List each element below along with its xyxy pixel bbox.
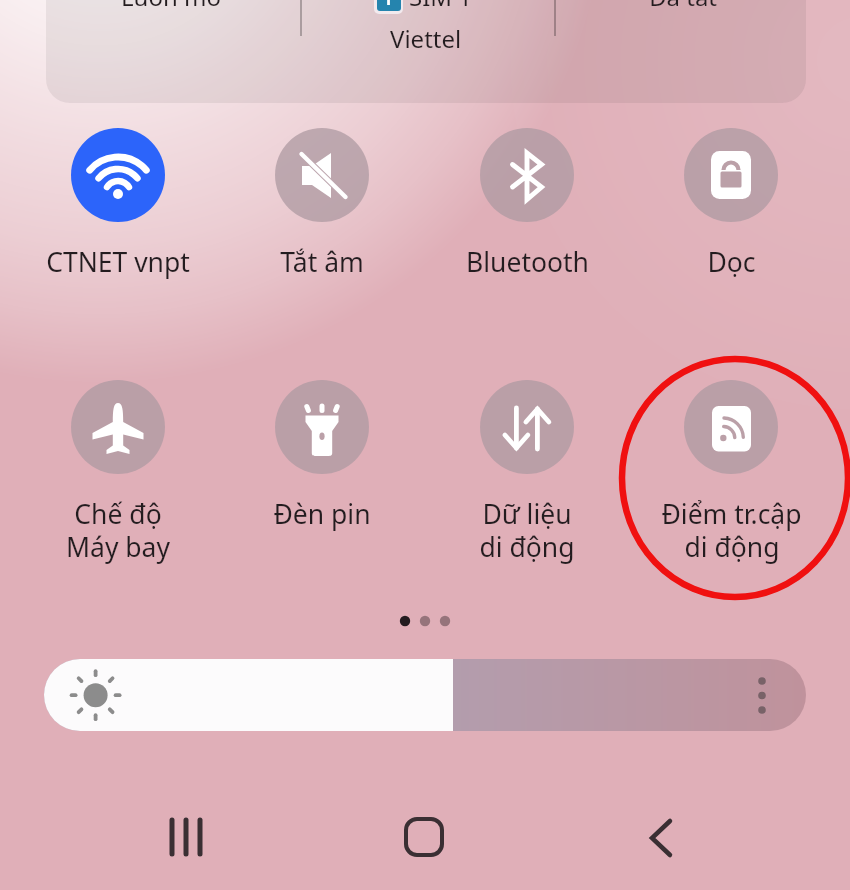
staticText: Dọc [707, 244, 756, 280]
staticText: Tắt âm [280, 244, 364, 280]
staticText: di động [684, 529, 780, 565]
staticText: Chế độ [74, 496, 162, 532]
staticText: CTNET vnpt [46, 244, 190, 280]
staticText: Đã tắt [649, 0, 718, 12]
button[interactable]: Bluetooth [425, 115, 629, 301]
button[interactable]: Dọc [629, 115, 833, 301]
staticText: Đèn pin [273, 496, 371, 532]
staticText: Luôn mở [121, 0, 222, 12]
staticText: SIM 1 [409, 0, 473, 12]
staticText: Bluetooth [466, 244, 589, 280]
button[interactable]: CTNET vnpt [16, 115, 220, 301]
button[interactable]: Recents [126, 790, 246, 884]
button[interactable]: Home [364, 790, 484, 884]
button[interactable]: Back [601, 790, 721, 884]
button[interactable]: Đèn pin [220, 367, 424, 553]
staticText: Máy bay [66, 529, 170, 565]
staticText: Viettel [390, 22, 462, 52]
button[interactable]: Chế độ [16, 367, 220, 553]
button[interactable]: Tắt âm [220, 115, 424, 301]
staticText: di động [479, 529, 575, 565]
staticText: Điểm tr.cập [661, 496, 802, 532]
button[interactable]: Brightness [44, 659, 806, 731]
staticText: Dữ liệu [482, 496, 572, 532]
staticText: i [386, 0, 392, 10]
button[interactable]: Dữ liệu [425, 367, 629, 553]
button[interactable]: Điểm tr.cập [629, 367, 833, 553]
